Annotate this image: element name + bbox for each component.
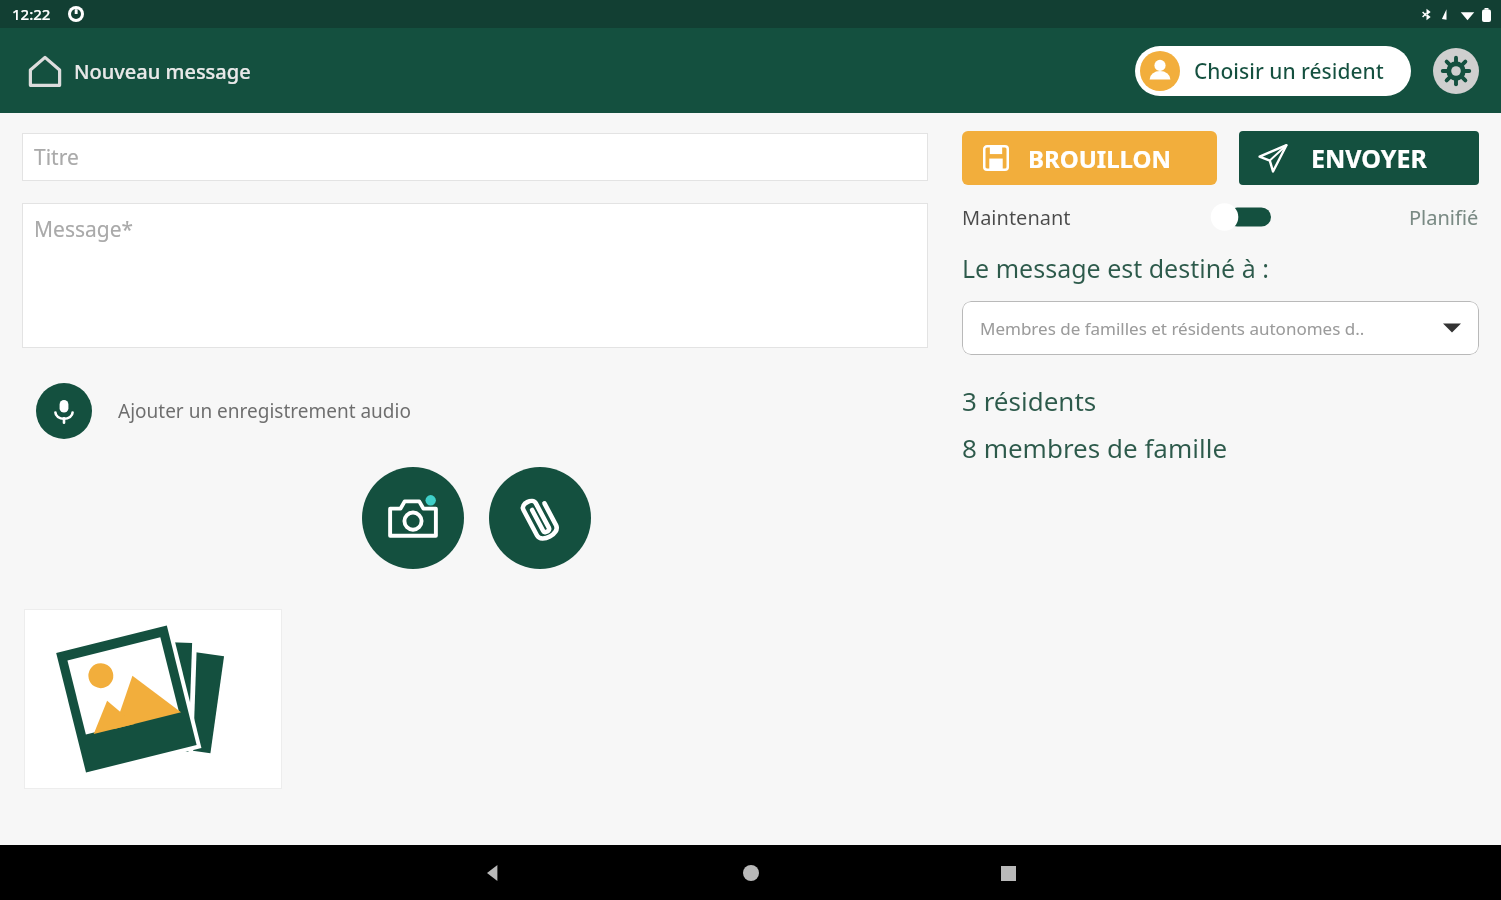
staticText: Choisir un résident: [1194, 57, 1384, 86]
button[interactable]: BROUILLON: [962, 131, 1217, 185]
button[interactable]: Ajouter des photos: [24, 609, 282, 789]
button[interactable]: ENVOYER: [1239, 131, 1479, 185]
button[interactable]: Applications récentes: [985, 850, 1031, 896]
button[interactable]: Accueil: [24, 50, 255, 92]
staticText: 12:22: [12, 4, 51, 24]
other: Accueil: [28, 54, 62, 88]
button[interactable]: Message*: [22, 203, 928, 348]
button[interactable]: Ajouter un enregistrement audio: [22, 383, 419, 439]
staticText: ENVOYER: [1311, 141, 1427, 175]
button[interactable]: Membres de familles et résidents autonom…: [962, 301, 1479, 355]
staticText: Message*: [34, 215, 134, 244]
staticText: BROUILLON: [1028, 142, 1172, 175]
staticText: 3 résidents: [962, 383, 1097, 418]
button[interactable]: Accueil: [728, 850, 774, 896]
button[interactable]: Paramètres: [1431, 46, 1481, 96]
staticText: Ajouter un enregistrement audio: [118, 398, 411, 424]
staticText: Le message est destiné à :: [962, 251, 1269, 285]
button[interactable]: Planifier l'envoi: [1209, 202, 1271, 232]
button[interactable]: Titre: [22, 133, 928, 181]
staticText: Maintenant: [962, 204, 1071, 231]
staticText: Planifié: [1409, 204, 1479, 231]
staticText: Membres de familles et résidents autonom…: [980, 317, 1433, 340]
staticText: Nouveau message: [74, 58, 251, 85]
button[interactable]: Prendre une photo: [362, 467, 464, 569]
button[interactable]: Joindre un fichier: [489, 467, 591, 569]
staticText: Titre: [34, 143, 79, 172]
staticText: 8 membres de famille: [962, 430, 1228, 465]
button[interactable]: Retour: [470, 850, 516, 896]
button[interactable]: Choisir un résident: [1135, 46, 1411, 96]
